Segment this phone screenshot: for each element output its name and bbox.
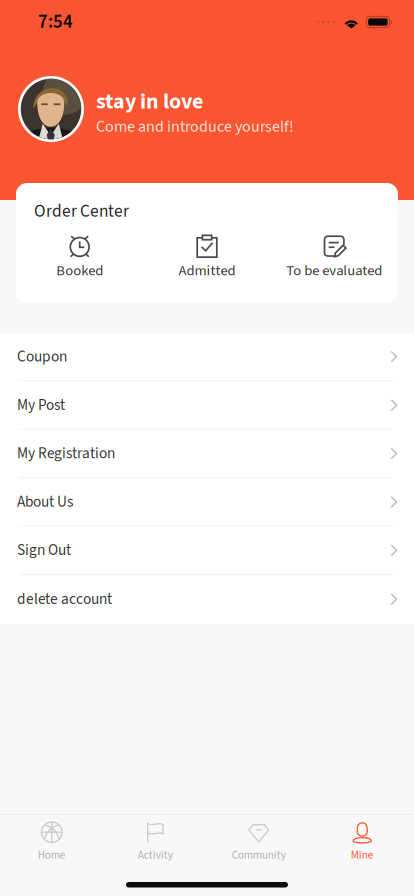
staticText: Come and introduce yourself! (96, 115, 294, 138)
button[interactable]: Sign Out (0, 527, 414, 575)
staticText: Booked (56, 260, 103, 281)
button[interactable]: Mine (310, 812, 414, 868)
staticText: delete account (17, 588, 112, 610)
button[interactable]: Admitted (143, 236, 271, 280)
staticText: About Us (17, 491, 73, 513)
staticText: Coupon (17, 346, 67, 368)
button[interactable]: Coupon (0, 333, 414, 381)
staticText: 7:54 (38, 9, 73, 35)
staticText: My Post (17, 394, 65, 416)
button[interactable]: Activity (103, 812, 207, 868)
staticText: Sign Out (17, 539, 71, 561)
button[interactable]: Community (207, 812, 310, 868)
button[interactable]: Home (0, 812, 103, 868)
staticText: Community (232, 847, 286, 863)
button[interactable]: My Post (0, 381, 414, 430)
button[interactable]: Booked (16, 236, 143, 280)
staticText: Order Center (34, 199, 129, 224)
button[interactable]: delete account (0, 575, 414, 623)
staticText: My Registration (17, 443, 115, 464)
button[interactable]: My Registration (0, 430, 414, 478)
staticText: Home (38, 847, 66, 863)
button[interactable]: To be evaluated (271, 236, 398, 280)
staticText: To be evaluated (286, 260, 382, 281)
staticText: Activity (138, 847, 173, 863)
staticText: Admitted (178, 260, 235, 281)
button[interactable]: About Us (0, 478, 414, 527)
staticText: Mine (351, 847, 374, 863)
staticText: stay in love (96, 86, 203, 117)
